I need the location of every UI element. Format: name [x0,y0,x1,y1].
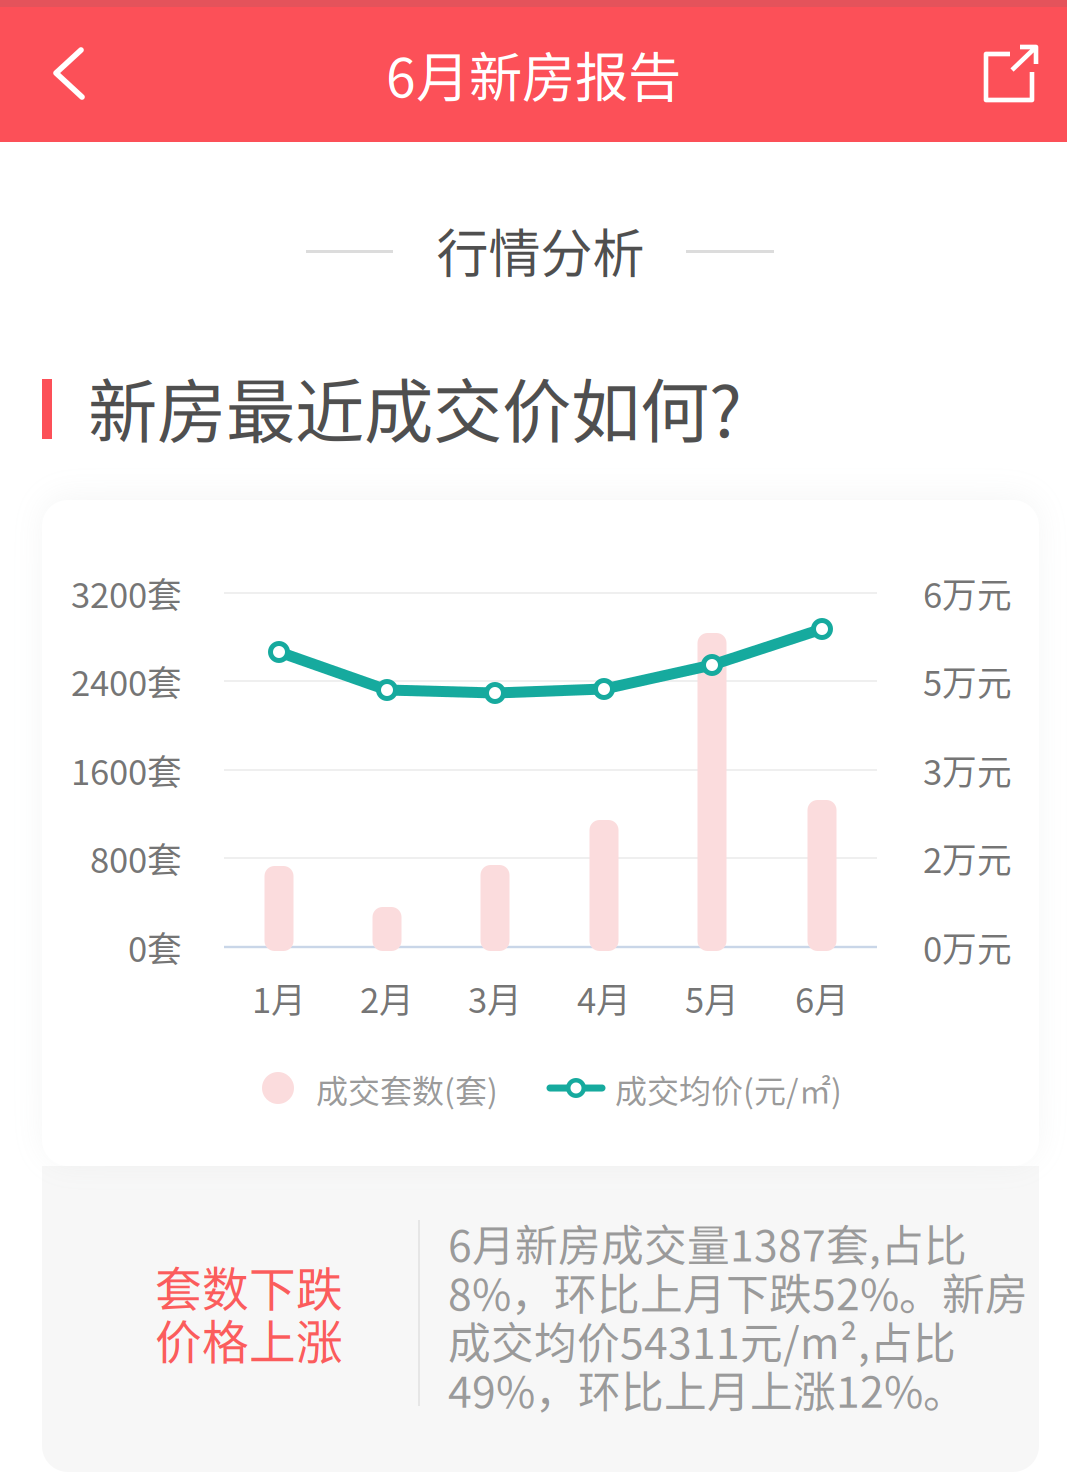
staticText: 6月新房成交量1387套,占比8%，环比上月下跌52%。新房成交均价54311元… [448,1212,1028,1420]
staticText: 6万元 [923,568,1012,618]
button[interactable]: Back [0,7,140,142]
staticText: 6月 [795,973,849,1023]
staticText: 3万元 [923,745,1012,795]
staticText: 行情分析 [436,212,644,288]
staticText: 800套 [90,833,182,883]
staticText: 6月新房报告 [386,35,681,113]
button[interactable]: Share [955,7,1067,142]
staticText: 新房最近成交价如何? [88,357,742,457]
staticText: 2月 [360,973,414,1023]
staticText: 成交套数(套) [316,1066,498,1112]
staticText: 3200套 [71,568,182,618]
staticText: 2400套 [71,656,182,706]
staticText: 3月 [468,973,522,1023]
staticText: 价格上涨 [155,1305,343,1373]
staticText: 1600套 [71,745,182,795]
staticText: 5万元 [923,656,1012,706]
staticText: 5月 [685,973,739,1023]
staticText: 0套 [128,922,182,972]
staticText: 2万元 [923,833,1012,883]
staticText: 套数下跌 [155,1252,343,1320]
staticText: 1月 [252,973,306,1023]
staticText: 4月 [577,973,631,1023]
staticText: 成交均价(元/㎡) [615,1066,842,1112]
staticText: 0万元 [923,922,1012,972]
